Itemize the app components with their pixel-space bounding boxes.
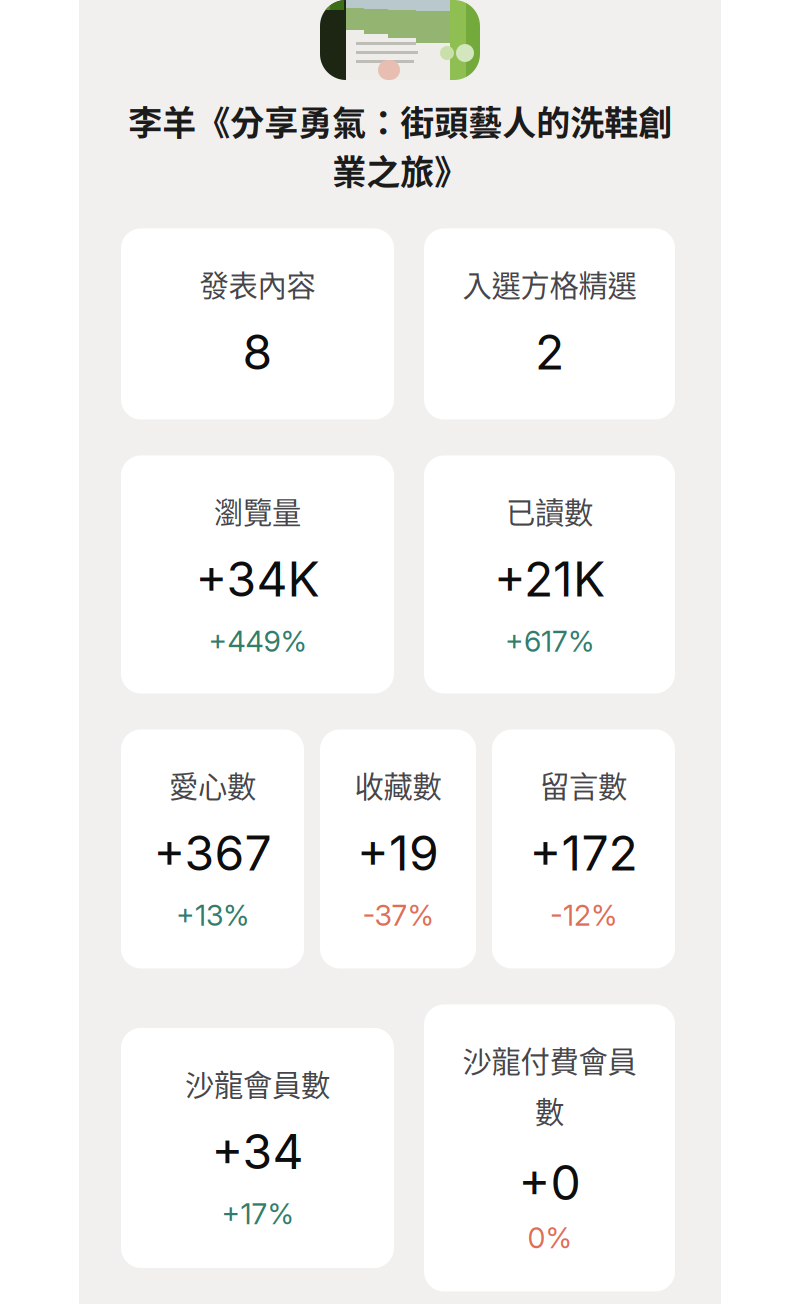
button[interactable]: 收藏數 (320, 729, 476, 968)
staticText: 收藏數 (354, 763, 441, 806)
staticText: 0% (527, 1220, 571, 1255)
staticText: 數 (535, 1089, 564, 1131)
staticText: +0 (518, 1153, 580, 1211)
staticText: 發表內容 (199, 262, 315, 305)
staticText: 留言數 (540, 763, 627, 806)
staticText: -37% (362, 898, 433, 933)
staticText: +617% (505, 624, 594, 659)
staticText: 8 (242, 323, 272, 381)
button[interactable]: 瀏覽量 (121, 455, 394, 693)
button[interactable]: 沙龍會員數 (121, 1028, 394, 1268)
staticText: +34 (211, 1122, 303, 1180)
staticText: 沙龍會員數 (185, 1062, 330, 1104)
staticText: +19 (357, 824, 439, 882)
staticText: 瀏覽量 (214, 489, 301, 532)
button[interactable]: 入選方格精選 (424, 228, 675, 419)
button[interactable]: 文章封面 (320, 0, 480, 80)
staticText: 愛心數 (169, 763, 256, 806)
staticText: -12% (550, 898, 617, 933)
staticText: 李羊《分享勇氣：街頭藝人的洗鞋創業之旅》 (128, 96, 672, 194)
button[interactable]: 留言數 (492, 729, 675, 968)
staticText: 已讀數 (506, 489, 593, 532)
staticText: +34K (195, 550, 319, 608)
staticText: 2 (535, 323, 564, 381)
button[interactable]: 已讀數 (424, 455, 675, 693)
staticText: 入選方格精選 (462, 262, 636, 305)
staticText: +449% (208, 624, 306, 659)
staticText: +17% (221, 1196, 293, 1231)
button[interactable]: 愛心數 (121, 729, 304, 968)
staticText: +13% (176, 898, 249, 933)
button[interactable]: 發表內容 (121, 228, 394, 419)
staticText: +21K (494, 550, 605, 608)
staticText: 沙龍付費會員 (462, 1038, 636, 1081)
staticText: +172 (529, 824, 637, 882)
staticText: +367 (153, 824, 271, 882)
button[interactable]: 沙龍付費會員 (424, 1004, 675, 1291)
